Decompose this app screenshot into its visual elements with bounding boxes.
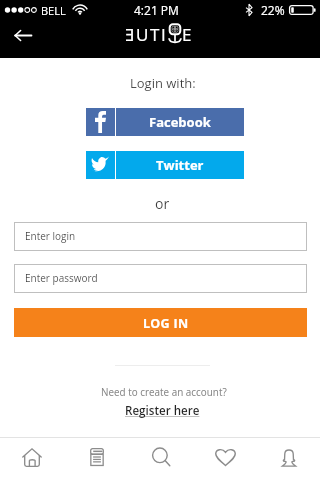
button[interactable]: Register here [125, 403, 200, 419]
staticText: BELL [41, 3, 66, 18]
button[interactable]: Home [3, 436, 61, 478]
button[interactable]: Enter login [14, 222, 307, 251]
staticText: or [155, 194, 170, 213]
button[interactable]: Favorites [196, 436, 254, 478]
staticText: Twitter [156, 156, 204, 174]
button[interactable]: Back [2, 19, 44, 51]
button[interactable]: Facebook [86, 108, 244, 136]
staticText: Register here [125, 403, 200, 419]
staticText: ƎUTI [125, 23, 168, 45]
staticText: 4:21 PM [134, 2, 179, 18]
button[interactable]: Enter password [14, 264, 307, 293]
button[interactable]: Search [132, 436, 190, 478]
staticText: Login with: [130, 74, 196, 92]
staticText: Enter password [25, 271, 98, 285]
button[interactable]: Catalog [68, 436, 126, 478]
button[interactable]: Profile [260, 436, 318, 478]
button[interactable]: Twitter [86, 151, 244, 179]
button[interactable]: LOG IN [14, 308, 307, 337]
staticText: Need to create an account? [101, 385, 227, 398]
staticText: Enter login [25, 229, 76, 243]
staticText: E [182, 23, 194, 45]
staticText: 22% [261, 2, 285, 18]
staticText: Facebook [149, 113, 211, 131]
staticText: LOG IN [143, 315, 189, 332]
